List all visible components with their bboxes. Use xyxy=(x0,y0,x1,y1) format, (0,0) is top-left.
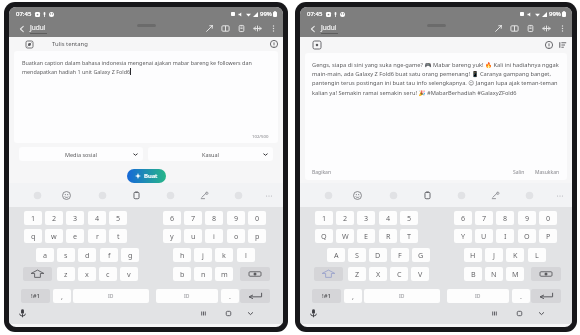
button[interactable]: ID xyxy=(156,289,218,303)
button[interactable]: p xyxy=(248,229,266,243)
button[interactable]: More options xyxy=(553,189,567,203)
button[interactable]: X xyxy=(369,267,387,281)
button[interactable]: 3 xyxy=(357,211,375,225)
button[interactable]: 4 xyxy=(379,211,397,225)
button[interactable]: 8 xyxy=(496,211,514,225)
button[interactable]: f xyxy=(100,248,118,262)
button[interactable]: Home xyxy=(221,303,235,324)
button[interactable]: 9 xyxy=(518,211,536,225)
button[interactable]: Buat xyxy=(127,169,166,183)
button[interactable]: Translate xyxy=(521,187,537,203)
button[interactable]: j xyxy=(194,248,212,262)
button[interactable]: 4 xyxy=(88,211,106,225)
button[interactable]: Enter xyxy=(531,289,561,303)
button[interactable]: Predictive text xyxy=(29,187,45,203)
button[interactable]: Home xyxy=(512,303,526,324)
button[interactable]: E xyxy=(357,229,375,243)
button[interactable]: Handwriting xyxy=(487,187,503,203)
button[interactable]: n xyxy=(194,267,212,281)
button[interactable]: More options xyxy=(554,20,570,37)
button[interactable]: 1 xyxy=(315,211,333,225)
button[interactable]: a xyxy=(36,248,54,262)
button[interactable]: B xyxy=(464,267,482,281)
button[interactable]: 8 xyxy=(205,211,223,225)
button[interactable]: M xyxy=(506,267,524,281)
button[interactable]: Back xyxy=(306,20,319,37)
button[interactable]: 3 xyxy=(66,211,84,225)
button[interactable]: 9 xyxy=(227,211,245,225)
button[interactable]: 7 xyxy=(184,211,202,225)
button[interactable]: Sticker xyxy=(162,187,178,203)
button[interactable]: l xyxy=(237,248,255,262)
button[interactable]: u xyxy=(184,229,202,243)
button[interactable]: 0 xyxy=(539,211,557,225)
button[interactable]: b xyxy=(173,267,191,281)
button[interactable]: Backspace xyxy=(531,267,561,281)
button[interactable]: . xyxy=(221,289,239,303)
button[interactable]: Backspace xyxy=(240,267,270,281)
button[interactable]: V xyxy=(411,267,429,281)
button[interactable]: !#1 xyxy=(21,289,50,303)
button[interactable]: I xyxy=(496,229,514,243)
button[interactable]: 1 xyxy=(24,211,42,225)
button[interactable]: A xyxy=(327,248,345,262)
button[interactable]: Settings xyxy=(94,187,110,203)
button[interactable]: Translate xyxy=(230,187,246,203)
button[interactable]: Recent apps xyxy=(487,303,501,324)
button[interactable]: s xyxy=(57,248,75,262)
button[interactable]: Q xyxy=(315,229,333,243)
button[interactable]: e xyxy=(66,229,84,243)
button[interactable]: 6 xyxy=(454,211,472,225)
button[interactable]: Clipboard xyxy=(128,187,144,203)
button[interactable]: z xyxy=(57,267,75,281)
button[interactable]: U xyxy=(475,229,493,243)
button[interactable]: g xyxy=(121,248,139,262)
button[interactable]: Hide keyboard xyxy=(534,303,548,324)
button[interactable]: Split screen xyxy=(217,20,233,37)
button[interactable]: O xyxy=(518,229,536,243)
button[interactable]: Info xyxy=(542,38,556,52)
button[interactable]: Media sosial xyxy=(19,147,143,161)
button[interactable]: F xyxy=(391,248,409,262)
button[interactable]: v xyxy=(120,267,138,281)
button[interactable]: Settings xyxy=(385,187,401,203)
button[interactable]: H xyxy=(464,248,482,262)
button[interactable]: Kasual xyxy=(148,147,273,161)
button[interactable]: Masukkan xyxy=(535,169,560,176)
button[interactable]: Resize xyxy=(249,20,265,37)
button[interactable]: List xyxy=(556,38,570,52)
button[interactable]: Clipboard xyxy=(419,187,435,203)
button[interactable]: y xyxy=(163,229,181,243)
button[interactable]: P xyxy=(539,229,557,243)
button[interactable]: ID xyxy=(364,289,440,303)
button[interactable]: S xyxy=(348,248,366,262)
button[interactable]: d xyxy=(78,248,96,262)
button[interactable]: x xyxy=(78,267,96,281)
button[interactable]: Voice input xyxy=(306,303,320,324)
button[interactable]: Info xyxy=(267,37,281,51)
button[interactable]: q xyxy=(24,229,42,243)
button[interactable]: Handwriting xyxy=(196,187,212,203)
button[interactable]: !#1 xyxy=(312,289,341,303)
button[interactable]: w xyxy=(45,229,63,243)
button[interactable]: m xyxy=(215,267,233,281)
button[interactable]: t xyxy=(109,229,127,243)
button[interactable]: ID xyxy=(73,289,149,303)
button[interactable]: Bagikan xyxy=(312,169,331,176)
button[interactable]: 2 xyxy=(336,211,354,225)
button[interactable]: Y xyxy=(454,229,472,243)
button[interactable]: Shift xyxy=(23,267,52,281)
button[interactable]: Shift xyxy=(314,267,343,281)
button[interactable]: More options xyxy=(262,189,276,203)
button[interactable]: Back xyxy=(15,20,28,37)
button[interactable]: o xyxy=(227,229,245,243)
button[interactable]: Recent apps xyxy=(196,303,210,324)
button[interactable]: Z xyxy=(348,267,366,281)
button[interactable]: L xyxy=(528,248,546,262)
button[interactable]: T xyxy=(400,229,418,243)
button[interactable]: r xyxy=(88,229,106,243)
button[interactable]: Emoji xyxy=(58,187,74,203)
button[interactable]: i xyxy=(205,229,223,243)
button[interactable]: C xyxy=(390,267,408,281)
button[interactable]: Resize xyxy=(538,20,554,37)
